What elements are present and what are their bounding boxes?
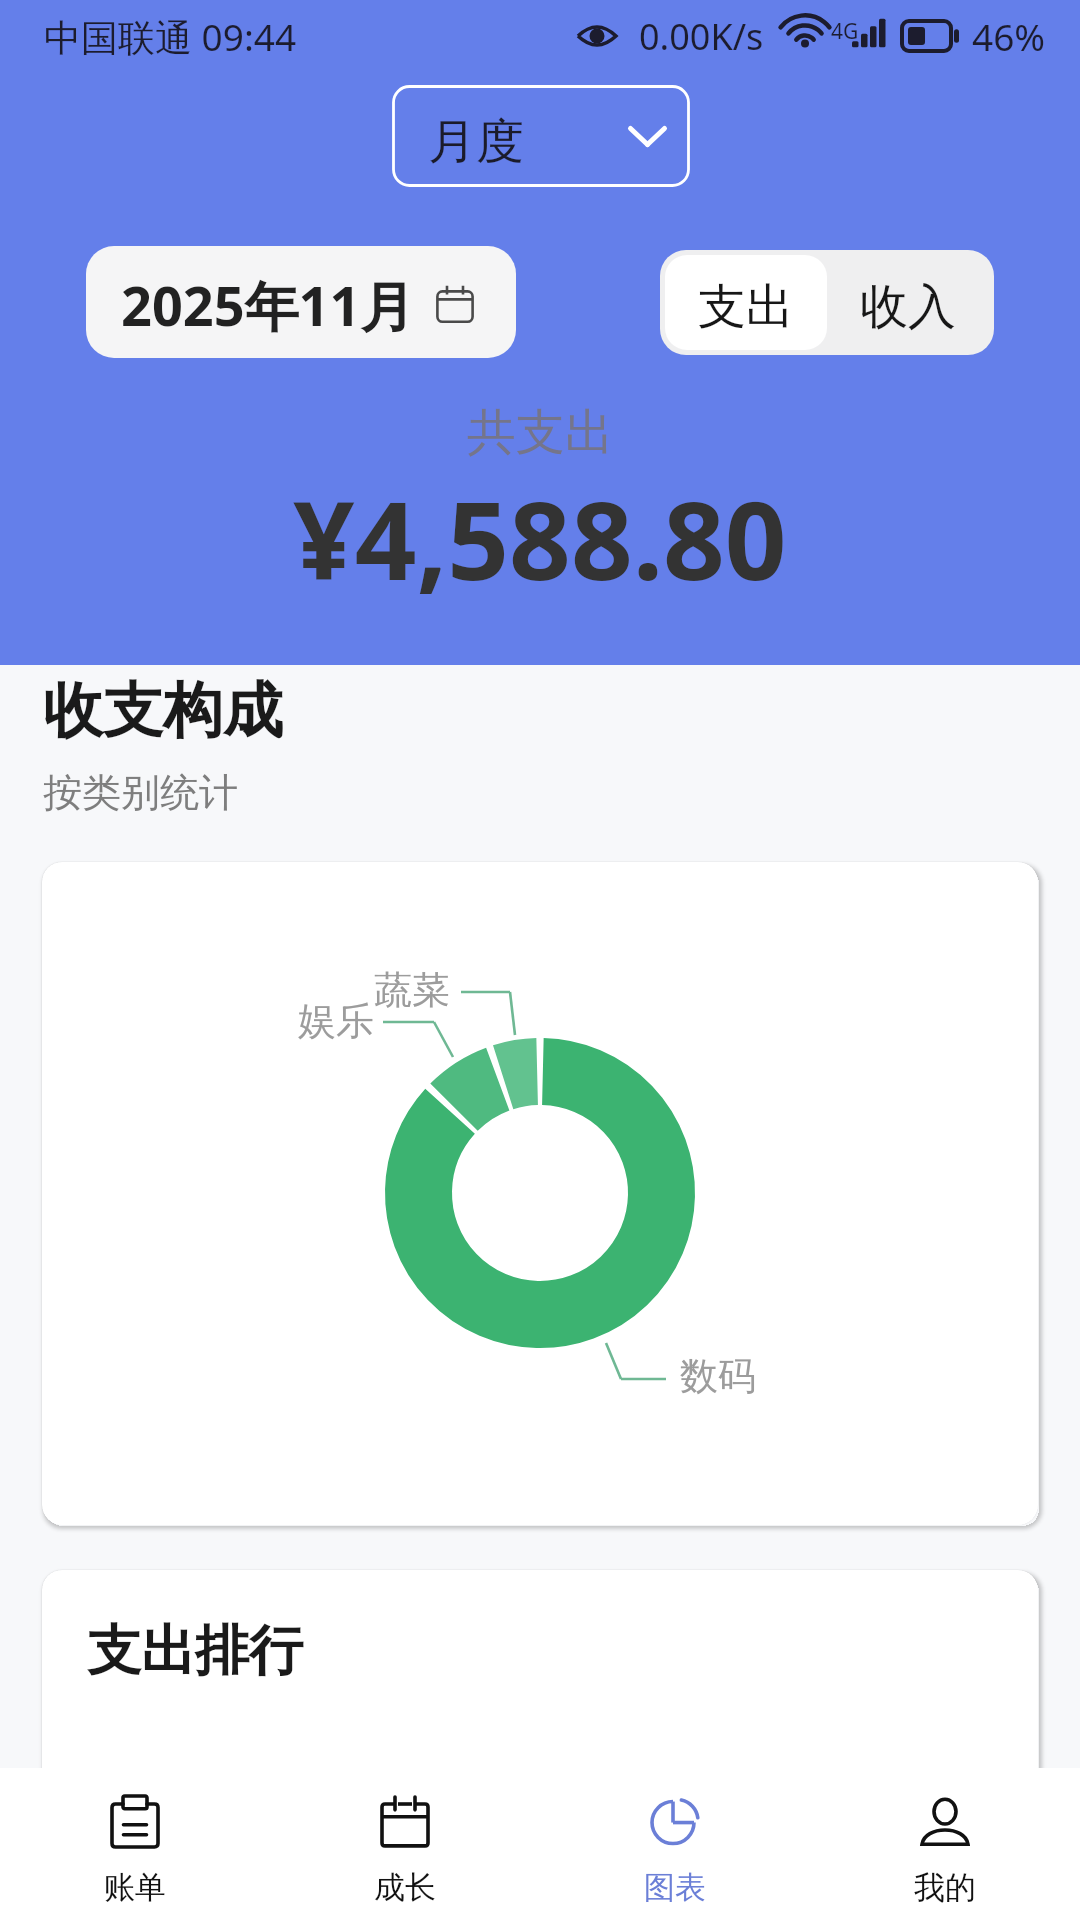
staticText: ¥4,588.80: [293, 465, 787, 612]
staticText: 4G: [831, 17, 859, 46]
staticText: 支出: [698, 277, 794, 337]
staticText: 账单: [104, 1868, 166, 1907]
button[interactable]: 支出: [665, 255, 827, 350]
staticText: 月度: [428, 112, 524, 172]
staticText: 2025年11月: [121, 268, 415, 342]
staticText: 共支出: [467, 402, 614, 464]
staticText: 中国联通 09:44: [44, 11, 297, 62]
button[interactable]: 月度: [392, 85, 690, 187]
staticText: 按类别统计: [43, 768, 238, 817]
staticText: 支出排行: [87, 1617, 303, 1685]
button[interactable]: 成长: [270, 1768, 540, 1920]
staticText: 收支构成: [43, 673, 283, 749]
staticText: 收入: [860, 277, 956, 337]
staticText: 我的: [914, 1868, 976, 1907]
staticText: 0.00K/s: [639, 12, 764, 61]
button[interactable]: 账单: [0, 1768, 270, 1920]
staticText: 成长: [374, 1868, 436, 1907]
staticText: 46%: [972, 11, 1046, 61]
button[interactable]: 图表: [540, 1768, 810, 1920]
button[interactable]: 收入: [827, 255, 989, 350]
button[interactable]: 2025年11月: [86, 246, 516, 358]
staticText: 图表: [644, 1868, 706, 1907]
staticText: 娱乐: [298, 997, 374, 1045]
staticText: 蔬菜: [374, 966, 450, 1014]
button[interactable]: 我的: [810, 1768, 1080, 1920]
staticText: 数码: [680, 1352, 756, 1400]
